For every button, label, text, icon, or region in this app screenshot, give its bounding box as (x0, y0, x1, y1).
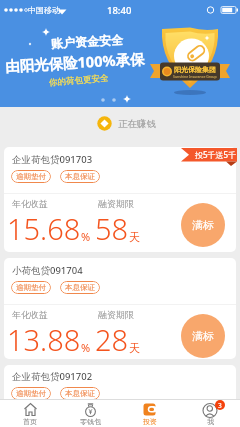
staticText: 投5千送5千 (195, 149, 237, 160)
staticText: 我 (207, 417, 214, 426)
button[interactable]: 企业荷包贷091703 (4, 147, 236, 252)
staticText: 年化收益 (12, 309, 48, 320)
staticText: Sunshine Insurance Group (173, 74, 217, 79)
staticText: 企业荷包贷091702 (12, 370, 93, 383)
staticText: % (81, 229, 91, 244)
staticText: 年化收益 (12, 198, 48, 209)
staticText: 投资 (143, 417, 157, 426)
staticText: 由阳光保险100%承保 (5, 48, 145, 76)
staticText: 逾期垫付 (16, 389, 46, 398)
staticText: 首页 (23, 417, 37, 426)
staticText: 零钱包 (80, 417, 101, 426)
staticText: 18:40 (107, 4, 132, 17)
staticText: 融资期限 (98, 309, 134, 320)
button[interactable]: 满标 (181, 314, 225, 358)
staticText: 本息保证 (65, 389, 95, 398)
staticText: 满标 (192, 218, 214, 232)
staticText: 13.88 (7, 320, 81, 359)
staticText: 正在赚钱 (118, 118, 156, 130)
staticText: 逾期垫付 (16, 172, 46, 181)
button[interactable]: 零钱包 (60, 399, 120, 427)
button[interactable]: 账户资金安全 (0, 20, 240, 107)
button[interactable]: 投资 (120, 399, 180, 427)
staticText: 天 (129, 341, 140, 355)
staticText: 天 (129, 230, 140, 244)
staticText: 小荷包贷091704 (12, 264, 83, 277)
staticText: 58 (95, 209, 129, 248)
staticText: 满标 (192, 329, 214, 343)
staticText: 融资期限 (98, 198, 134, 209)
staticText: 逾期垫付 (16, 283, 46, 292)
button[interactable]: 首页 (0, 399, 60, 427)
staticText: 账户资金安全 (51, 32, 123, 51)
button[interactable]: 满标 (181, 203, 225, 247)
button[interactable]: 小荷包贷091704 (4, 258, 236, 359)
staticText: 本息保证 (65, 172, 95, 181)
button[interactable]: 企业荷包贷091702 (4, 365, 236, 405)
staticText: % (81, 340, 91, 355)
staticText: 你的荷包更安全 (49, 72, 109, 89)
staticText: 阳光保险集团 (174, 65, 216, 74)
staticText: 企业荷包贷091703 (12, 153, 93, 166)
staticText: 3 (218, 401, 222, 410)
staticText: 28 (95, 320, 129, 359)
staticText: 15.68 (7, 209, 81, 248)
staticText: 本息保证 (65, 283, 95, 292)
button[interactable]: 正在赚钱 (0, 107, 240, 147)
staticText: 中国移动 (28, 5, 60, 15)
button[interactable]: 3 (180, 399, 240, 427)
